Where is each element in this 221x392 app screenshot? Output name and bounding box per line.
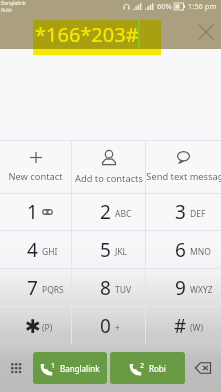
staticText: Banglalink	[1, 0, 26, 7]
staticText: TUV	[115, 284, 132, 296]
staticText: (W)	[190, 322, 204, 334]
staticText: 2	[100, 199, 111, 225]
staticText: 1	[51, 361, 56, 371]
button[interactable]: 4	[0, 231, 71, 268]
button[interactable]: 1	[33, 352, 107, 384]
staticText: *166*203#	[35, 21, 139, 48]
staticText: 3	[175, 199, 186, 225]
button[interactable]: 8	[72, 269, 145, 306]
staticText: Robi	[1, 7, 12, 14]
button[interactable]: 0	[72, 307, 145, 344]
button[interactable]: 9	[146, 269, 221, 306]
button[interactable]: Backspace	[185, 344, 221, 392]
staticText: Add to contacts	[75, 172, 143, 185]
button[interactable]: 2	[72, 194, 145, 230]
staticText: New contact	[8, 170, 63, 183]
staticText: 7	[27, 275, 38, 301]
button[interactable]: 3	[146, 194, 221, 230]
staticText: WXYZ	[190, 284, 213, 296]
button[interactable]: 6	[146, 231, 221, 268]
staticText: 8	[100, 275, 111, 301]
staticText: 5	[100, 237, 111, 263]
staticText: #	[174, 313, 187, 339]
button[interactable]: 7	[0, 269, 71, 306]
staticText: 1:56 pm	[188, 1, 217, 11]
staticText: 6	[175, 237, 186, 263]
button[interactable]: 1	[0, 194, 71, 230]
button[interactable]: Add to contacts	[72, 141, 145, 193]
staticText: +	[115, 322, 120, 334]
staticText: 2	[140, 361, 145, 371]
staticText: PQRS	[42, 284, 64, 296]
button[interactable]: 2	[110, 352, 185, 384]
staticText: 0	[100, 313, 111, 339]
staticText: 1	[27, 199, 38, 225]
button[interactable]: #	[146, 307, 221, 344]
staticText: DEF	[190, 208, 206, 220]
staticText: Robi	[149, 363, 166, 374]
staticText: 60%	[157, 1, 172, 11]
button[interactable]: ✱	[0, 307, 71, 344]
staticText: (P)	[42, 322, 53, 334]
staticText: GHI	[42, 246, 58, 258]
staticText: JKL	[115, 246, 128, 258]
button[interactable]: Dialpad	[0, 344, 33, 392]
staticText: Send text message	[146, 170, 221, 183]
button[interactable]: Send text message	[146, 141, 221, 193]
staticText: Banglalink	[60, 363, 100, 374]
staticText: ✱	[25, 315, 41, 337]
staticText: 4	[27, 237, 38, 263]
button[interactable]: 5	[72, 231, 145, 268]
button[interactable]: Clear	[195, 21, 217, 43]
button[interactable]: New contact	[0, 141, 71, 193]
staticText: 9	[175, 275, 186, 301]
staticText: MNO	[190, 246, 211, 258]
staticText: ABC	[115, 208, 132, 220]
